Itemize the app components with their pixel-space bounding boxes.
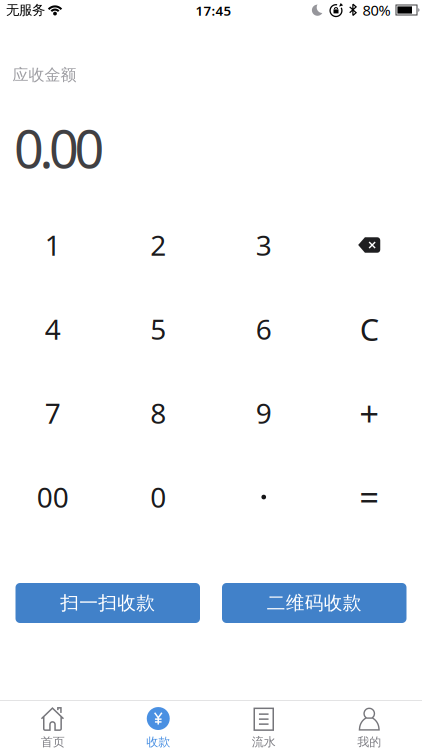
staticText: 1 bbox=[45, 226, 61, 264]
button[interactable]: C bbox=[316, 287, 422, 371]
button[interactable]: 3 bbox=[211, 203, 316, 287]
button[interactable]: 0 bbox=[105, 455, 211, 539]
button[interactable]: 我的 bbox=[316, 700, 422, 750]
staticText: 应收金额 bbox=[12, 65, 76, 85]
button[interactable]: = bbox=[316, 455, 422, 539]
button[interactable]: + bbox=[316, 371, 422, 455]
button[interactable]: 二维码收款 bbox=[222, 583, 406, 623]
staticText: 二维码收款 bbox=[267, 591, 362, 614]
staticText: 00 bbox=[37, 478, 69, 516]
staticText: 8 bbox=[150, 394, 166, 432]
staticText: C bbox=[360, 309, 379, 349]
button[interactable]: 2 bbox=[105, 203, 211, 287]
staticText: 0 bbox=[150, 478, 166, 516]
staticText: 6 bbox=[256, 310, 272, 348]
button[interactable]: 9 bbox=[211, 371, 316, 455]
staticText: 17:45 bbox=[195, 2, 231, 19]
staticText: 流水 bbox=[252, 734, 276, 749]
staticText: 9 bbox=[256, 394, 272, 432]
staticText: = bbox=[359, 474, 379, 520]
button[interactable]: 扫一扫收款 bbox=[15, 583, 200, 623]
staticText: 3 bbox=[256, 226, 272, 264]
staticText: 7 bbox=[45, 394, 61, 432]
staticText: 5 bbox=[150, 310, 166, 348]
staticText: 4 bbox=[45, 310, 61, 348]
button[interactable]: 流水 bbox=[211, 700, 316, 750]
button[interactable]: 5 bbox=[105, 287, 211, 371]
button[interactable]: 00 bbox=[0, 455, 105, 539]
staticText: 扫一扫收款 bbox=[60, 591, 155, 614]
button[interactable]: 4 bbox=[0, 287, 105, 371]
button[interactable]: 6 bbox=[211, 287, 316, 371]
staticText: + bbox=[359, 390, 379, 436]
staticText: 我的 bbox=[357, 734, 381, 749]
staticText: 收款 bbox=[146, 734, 170, 749]
staticText: 无服务 bbox=[6, 2, 45, 18]
button[interactable] bbox=[211, 455, 316, 539]
button[interactable]: 收款 bbox=[105, 700, 211, 750]
button[interactable]: 8 bbox=[105, 371, 211, 455]
button[interactable] bbox=[316, 203, 422, 287]
staticText: 首页 bbox=[41, 734, 65, 749]
staticText: 80% bbox=[362, 0, 390, 20]
button[interactable]: 1 bbox=[0, 203, 105, 287]
button[interactable]: 7 bbox=[0, 371, 105, 455]
staticText: 2 bbox=[150, 226, 166, 264]
button[interactable]: 首页 bbox=[0, 700, 105, 750]
staticText: 0.00 bbox=[14, 113, 104, 183]
